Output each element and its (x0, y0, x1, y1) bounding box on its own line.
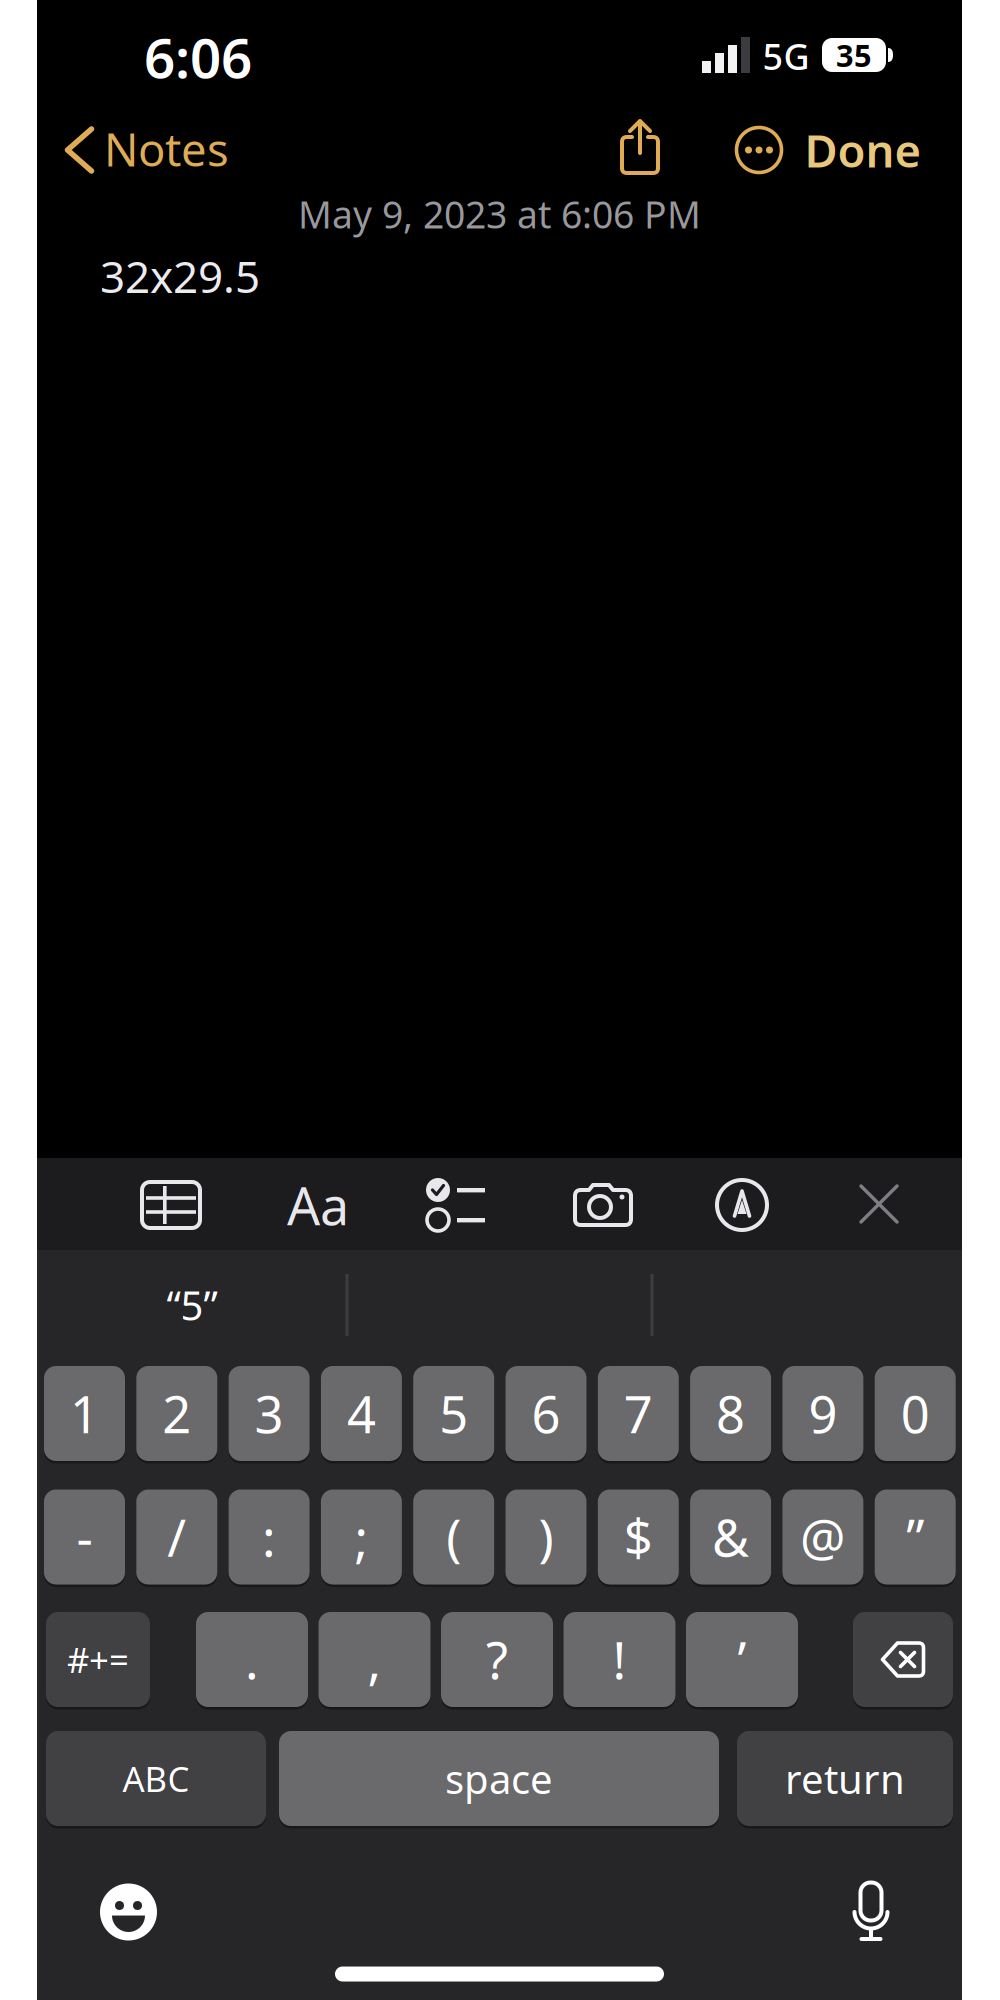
staticText: 3 (255, 1380, 284, 1447)
button[interactable]: ” (875, 1489, 956, 1584)
button[interactable]: #+= (46, 1612, 150, 1707)
staticText: - (76, 1503, 92, 1571)
button[interactable]: @ (782, 1489, 863, 1584)
button[interactable]: Insert photo (575, 1183, 631, 1227)
staticText: 1 (70, 1380, 99, 1447)
staticText: 6:06 (144, 21, 252, 93)
button[interactable]: ; (321, 1489, 402, 1584)
button[interactable]: Emoji (100, 1883, 157, 1940)
button[interactable]: 4 (321, 1366, 402, 1461)
staticText: 5 (439, 1380, 468, 1447)
button[interactable]: : (229, 1489, 310, 1584)
button[interactable]: 2 (136, 1366, 217, 1461)
button[interactable]: “5” (47, 1260, 337, 1350)
button[interactable]: ) (505, 1489, 586, 1584)
button[interactable]: 0 (875, 1366, 956, 1461)
staticText: return (785, 1752, 905, 1805)
button[interactable]: 5 (413, 1366, 494, 1461)
staticText: 32x29.5 (100, 247, 260, 305)
staticText: ’ (737, 1626, 746, 1693)
staticText: 5G (762, 32, 809, 80)
staticText: “5” (166, 1278, 217, 1331)
button[interactable]: 7 (598, 1366, 679, 1461)
button[interactable]: $ (598, 1489, 679, 1584)
staticText: ” (906, 1503, 924, 1571)
button[interactable]: ’ (686, 1612, 798, 1707)
staticText: 2 (162, 1380, 191, 1447)
button[interactable]: Dismiss keyboard (860, 1185, 898, 1223)
button[interactable]: 9 (782, 1366, 863, 1461)
staticText: space (445, 1752, 553, 1805)
staticText: 35 (836, 35, 872, 75)
staticText: Aa (287, 1170, 349, 1240)
button[interactable]: ? (441, 1612, 553, 1707)
button[interactable]: Insert table (142, 1182, 200, 1228)
staticText: , (367, 1626, 381, 1693)
staticText: & (712, 1503, 749, 1571)
button[interactable]: ( (413, 1489, 494, 1584)
staticText: Done (804, 120, 921, 180)
button[interactable]: Markup (717, 1180, 767, 1230)
staticText: ; (354, 1503, 368, 1571)
button[interactable]: Checklist (425, 1177, 485, 1233)
button[interactable]: - (44, 1489, 125, 1584)
staticText: . (245, 1626, 259, 1693)
button[interactable]: return (737, 1731, 953, 1826)
button[interactable]: / (136, 1489, 217, 1584)
button[interactable]: ABC (46, 1731, 266, 1826)
staticText: ! (612, 1626, 626, 1693)
staticText: ( (446, 1503, 461, 1571)
button[interactable]: ! (563, 1612, 675, 1707)
staticText: Notes (104, 119, 229, 179)
button[interactable]: Format (283, 1177, 353, 1233)
staticText: ? (486, 1626, 508, 1693)
staticText: 0 (901, 1380, 930, 1447)
staticText: / (167, 1503, 186, 1571)
staticText: 7 (624, 1380, 653, 1447)
button[interactable]: & (690, 1489, 771, 1584)
button[interactable]: Share (620, 119, 660, 175)
staticText: ABC (122, 1755, 189, 1801)
button[interactable]: More (736, 127, 782, 173)
button[interactable]: Delete (853, 1612, 953, 1707)
staticText: 8 (716, 1380, 745, 1447)
button[interactable]: 3 (229, 1366, 310, 1461)
staticText: #+= (67, 1636, 129, 1682)
staticText: 4 (347, 1380, 376, 1447)
button[interactable]: , (318, 1612, 430, 1707)
staticText: : (262, 1503, 276, 1571)
button[interactable]: Notes (62, 127, 207, 173)
button[interactable]: Done (783, 125, 943, 175)
button[interactable]: Dictation (848, 1881, 893, 1941)
staticText: ) (538, 1503, 553, 1571)
staticText: $ (624, 1503, 653, 1571)
button[interactable]: . (196, 1612, 308, 1707)
staticText: @ (800, 1503, 846, 1571)
staticText: 6 (531, 1380, 560, 1447)
staticText: May 9, 2023 at 6:06 PM (298, 189, 701, 239)
staticText: 9 (808, 1380, 837, 1447)
button[interactable]: 6 (505, 1366, 586, 1461)
button[interactable]: 8 (690, 1366, 771, 1461)
button[interactable]: 1 (44, 1366, 125, 1461)
button[interactable]: space (279, 1731, 719, 1826)
